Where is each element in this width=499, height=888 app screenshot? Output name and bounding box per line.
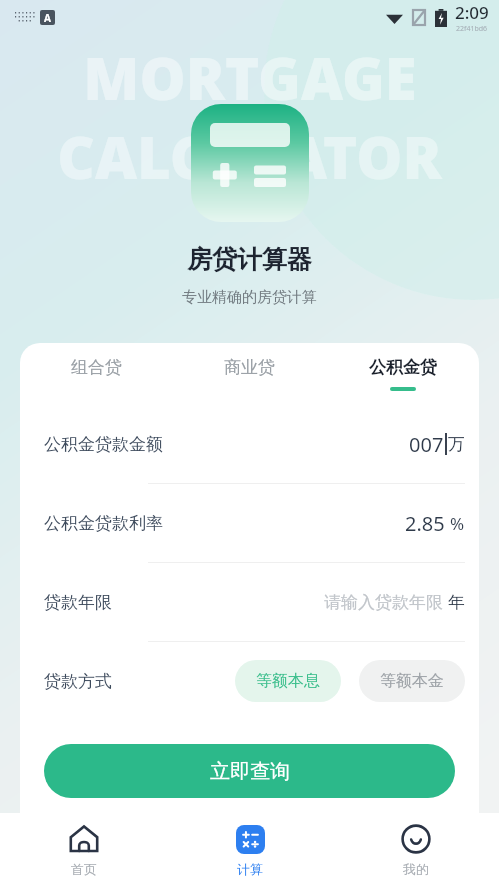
staticText: 22f41bd6 <box>456 24 488 34</box>
staticText: 公积金贷款利率 <box>44 513 163 534</box>
staticText: % <box>450 512 465 535</box>
staticText: 2:09 <box>455 1 489 24</box>
button[interactable]: 公积金贷款金额 <box>44 405 465 483</box>
button[interactable]: 公积金贷款利率 <box>44 484 465 562</box>
staticText: 我的 <box>403 861 429 877</box>
button[interactable]: 等额本息 <box>235 660 341 702</box>
button[interactable]: 公积金贷 <box>326 343 479 405</box>
button[interactable]: 贷款年限 <box>44 563 465 641</box>
button[interactable]: 我的 <box>333 813 499 888</box>
staticText: MORTGAGE <box>83 38 417 117</box>
staticText: 贷款年限 <box>44 592 112 613</box>
staticText: 首页 <box>71 861 97 877</box>
staticText: 年 <box>448 592 465 613</box>
staticText: 万 <box>448 434 465 455</box>
button[interactable]: 等额本金 <box>359 660 465 702</box>
staticText: 计算 <box>237 861 263 877</box>
staticText: 组合贷 <box>71 357 122 378</box>
button[interactable]: 首页 <box>0 813 167 888</box>
staticText: 007 <box>409 431 444 458</box>
staticText: 商业贷 <box>224 357 275 378</box>
button[interactable]: 计算 <box>167 813 333 888</box>
staticText: 2.85 <box>405 510 445 537</box>
staticText: 请输入贷款年限 <box>324 592 443 613</box>
staticText: 贷款方式 <box>44 671 112 692</box>
button[interactable]: 组合贷 <box>20 343 173 405</box>
button[interactable]: 商业贷 <box>173 343 326 405</box>
staticText: 等额本息 <box>256 671 320 691</box>
staticText: 专业精确的房贷计算 <box>182 288 317 307</box>
staticText: A <box>44 11 51 25</box>
button[interactable]: 立即查询 <box>44 744 455 798</box>
staticText: 立即查询 <box>210 759 290 784</box>
staticText: CALCULATOR <box>57 117 442 196</box>
staticText: 等额本金 <box>380 671 444 691</box>
staticText: 公积金贷 <box>369 357 437 378</box>
staticText: 房贷计算器 <box>187 244 312 275</box>
staticText: 公积金贷款金额 <box>44 434 163 455</box>
